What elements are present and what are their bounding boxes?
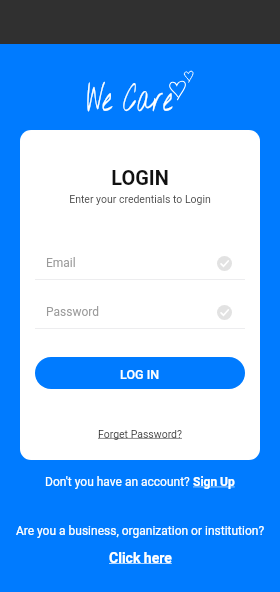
other: Valid: [217, 256, 232, 271]
button[interactable]: Password: [35, 301, 245, 329]
staticText: LOGIN: [20, 166, 260, 189]
staticText: Are you a business, organization or inst…: [0, 524, 280, 538]
staticText: Enter your credentials to Login: [20, 193, 260, 205]
button[interactable]: LOG IN: [35, 357, 245, 389]
button[interactable]: Click here: [109, 550, 172, 566]
button[interactable]: Email: [35, 252, 245, 280]
staticText: Email: [46, 256, 76, 270]
staticText: Don't you have an account?: [45, 475, 193, 489]
button[interactable]: Forget Password?: [98, 428, 182, 440]
staticText: We Care: [87, 74, 172, 124]
button[interactable]: Don't you have an account?: [45, 475, 235, 489]
staticText: Sign Up: [193, 475, 235, 489]
staticText: LOG IN: [120, 367, 160, 382]
staticText: Password: [46, 305, 100, 319]
other: Valid: [217, 305, 232, 320]
